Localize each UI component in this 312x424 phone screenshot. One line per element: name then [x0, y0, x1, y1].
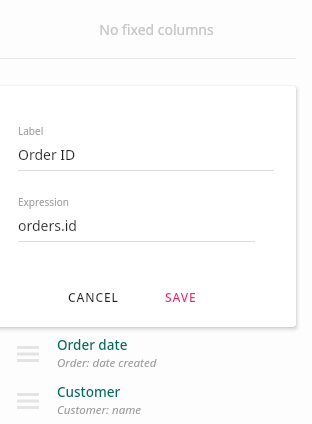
button[interactable]: SAVE — [157, 281, 205, 313]
button[interactable]: Reorder — [0, 330, 312, 377]
staticText: Expression — [18, 195, 69, 209]
button[interactable]: Label — [0, 124, 296, 171]
staticText: Order date — [57, 336, 128, 354]
other: Reorder — [17, 346, 39, 362]
staticText: Order: date created — [57, 355, 157, 371]
staticText: SAVE — [165, 289, 197, 305]
staticText: Customer: name — [57, 402, 141, 418]
staticText: Order ID — [18, 145, 76, 164]
staticText: Label — [18, 124, 44, 138]
staticText: CANCEL — [68, 289, 119, 305]
staticText: Customer — [57, 383, 121, 401]
button[interactable]: CANCEL — [60, 281, 127, 313]
button[interactable]: Expression — [0, 195, 296, 242]
staticText: No fixed columns — [99, 20, 214, 39]
staticText: orders.id — [18, 216, 77, 235]
button[interactable]: Reorder — [0, 377, 312, 424]
other: Reorder — [17, 393, 39, 409]
